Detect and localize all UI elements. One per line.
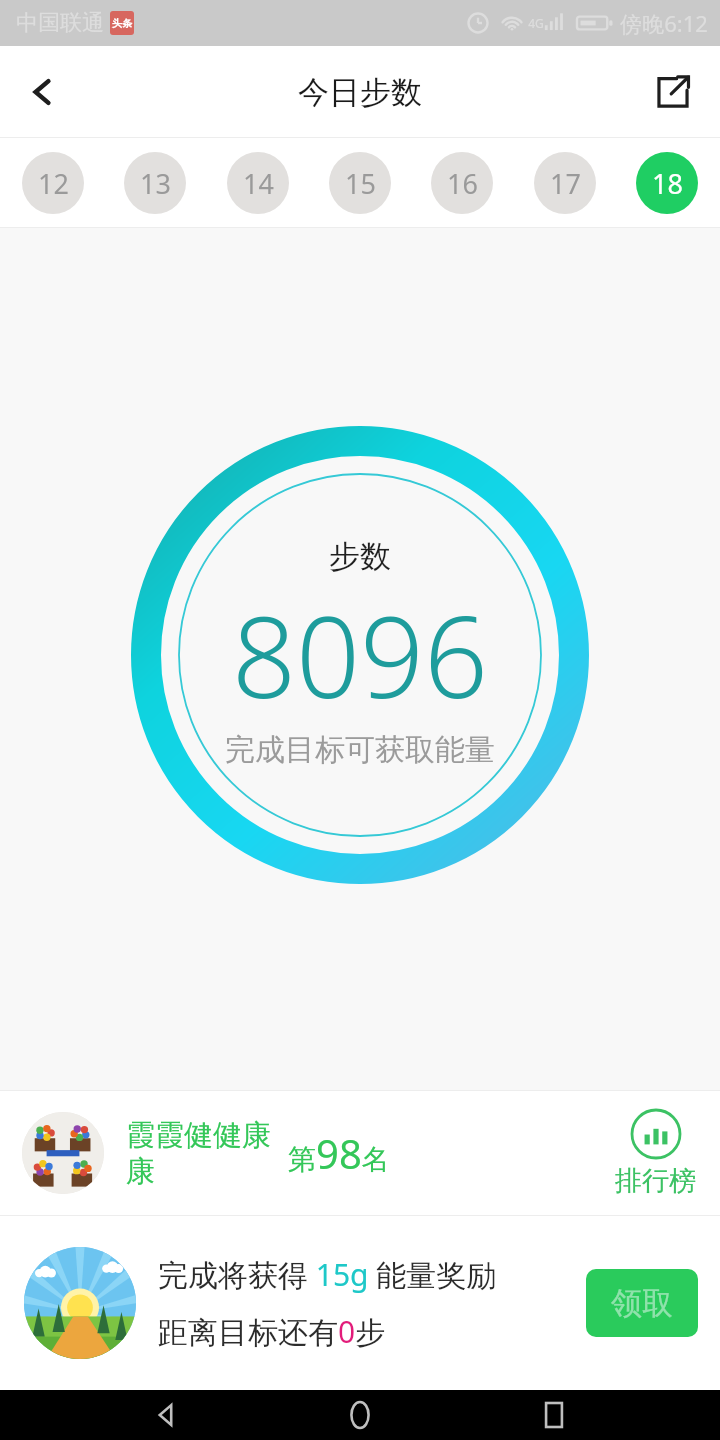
staticText: 12 bbox=[38, 165, 69, 202]
button[interactable]: 17 bbox=[534, 152, 596, 214]
staticText: 头条 bbox=[112, 17, 132, 30]
staticText: 步数 bbox=[329, 537, 391, 576]
button[interactable]: 领取 bbox=[586, 1269, 698, 1337]
staticText: 第98名 bbox=[288, 1126, 390, 1180]
button[interactable]: Home bbox=[332, 1390, 388, 1440]
staticText: 距离目标还有0步 bbox=[158, 1311, 386, 1352]
staticText: 16 bbox=[447, 165, 478, 202]
staticText: 18 bbox=[652, 165, 683, 202]
button[interactable]: Back bbox=[8, 58, 76, 126]
staticText: 15 bbox=[345, 165, 376, 202]
staticText: 排行榜 bbox=[615, 1164, 696, 1198]
button[interactable]: Recents bbox=[526, 1390, 582, 1440]
staticText: 中国联通 bbox=[16, 9, 104, 37]
button[interactable]: Share bbox=[640, 59, 706, 125]
staticText: 领取 bbox=[611, 1284, 673, 1323]
button[interactable]: 14 bbox=[227, 152, 289, 214]
staticText: 14 bbox=[243, 165, 274, 202]
button[interactable]: 18 bbox=[636, 152, 698, 214]
staticText: 13 bbox=[140, 165, 171, 202]
button[interactable]: 15 bbox=[329, 152, 391, 214]
staticText: 傍晚6:12 bbox=[620, 8, 708, 38]
button[interactable]: 排行榜 bbox=[607, 1102, 704, 1204]
staticText: 完成目标可获取能量 bbox=[225, 731, 495, 769]
staticText: 8096 bbox=[232, 578, 488, 731]
staticText: 霞霞健健康康 bbox=[126, 1117, 274, 1189]
staticText: 完成将获得 15g 能量奖励 bbox=[158, 1254, 497, 1295]
button[interactable]: Back bbox=[138, 1390, 194, 1440]
button[interactable]: 16 bbox=[431, 152, 493, 214]
button[interactable]: 12 bbox=[22, 152, 84, 214]
button[interactable]: 13 bbox=[124, 152, 186, 214]
staticText: 17 bbox=[550, 165, 581, 202]
staticText: 4G bbox=[528, 15, 544, 31]
staticText: 今日步数 bbox=[298, 73, 422, 112]
